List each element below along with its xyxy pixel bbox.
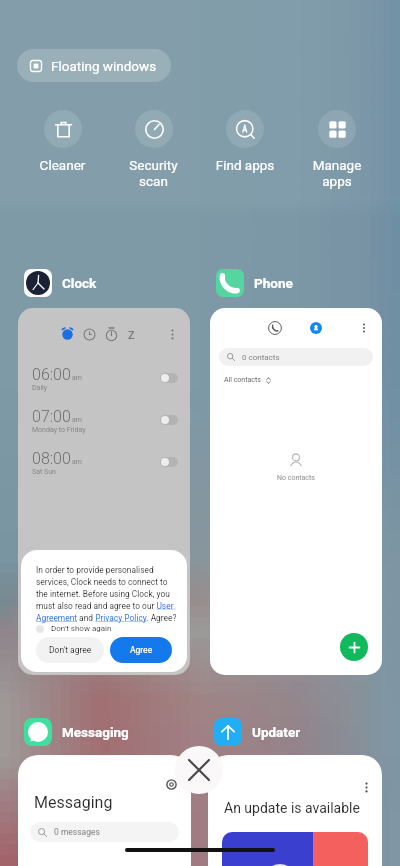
- button[interactable]: Floating windows: [17, 49, 171, 82]
- staticText: Don't agree: [49, 645, 92, 655]
- staticText: Agree: [130, 645, 153, 655]
- staticText: Messaging: [34, 793, 113, 812]
- button[interactable]: Z: [18, 308, 190, 675]
- button[interactable]: 08:00: [32, 441, 178, 483]
- staticText: am: [72, 374, 82, 382]
- staticText: am: [72, 458, 82, 466]
- staticText: Updater: [252, 724, 301, 740]
- button[interactable]: Add contact: [340, 633, 368, 661]
- staticText: No contacts: [277, 474, 315, 482]
- staticText: Daily: [32, 384, 48, 392]
- button[interactable]: 0 contacts: [210, 308, 382, 675]
- button[interactable]: 0 contacts: [219, 348, 373, 366]
- button[interactable]: An update is available: [208, 755, 382, 866]
- staticText: Sat Sun: [32, 468, 56, 476]
- button[interactable]: 06:00: [32, 357, 178, 399]
- button[interactable]: Close all: [175, 746, 223, 794]
- staticText: An update is available: [224, 800, 360, 816]
- staticText: Messaging: [62, 724, 129, 740]
- staticText: Monday to Friday: [32, 426, 86, 434]
- staticText: 0 messages: [54, 827, 100, 837]
- staticText: Don't show again: [51, 624, 112, 633]
- button[interactable]: Don't show again: [36, 624, 112, 633]
- button[interactable]: Manage apps: [291, 110, 383, 190]
- staticText: Z: [128, 329, 135, 342]
- button[interactable]: Messaging: [18, 755, 191, 866]
- staticText: Manage apps: [291, 157, 383, 190]
- staticText: am: [72, 416, 82, 424]
- button[interactable]: 0 messages: [30, 822, 179, 842]
- button[interactable]: Don't agree: [36, 637, 104, 663]
- button[interactable]: Cleaner: [17, 110, 108, 173]
- staticText: Floating windows: [51, 58, 157, 74]
- staticText: Clock: [62, 275, 97, 291]
- button[interactable]: Clock: [18, 269, 97, 297]
- staticText: 0 contacts: [242, 353, 280, 362]
- button[interactable]: Messaging: [18, 718, 129, 746]
- staticText: Security scan: [108, 157, 199, 190]
- button[interactable]: 07:00: [32, 399, 178, 441]
- staticText: 07:00: [32, 407, 71, 426]
- button[interactable]: Phone: [210, 269, 293, 297]
- staticText: All contacts: [224, 376, 261, 384]
- button[interactable]: Security scan: [108, 110, 199, 190]
- staticText: Cleaner: [17, 157, 108, 173]
- button[interactable]: Updater: [208, 718, 301, 746]
- staticText: Phone: [254, 275, 293, 291]
- button[interactable]: All contacts: [224, 376, 272, 384]
- button[interactable]: Find apps: [199, 110, 291, 173]
- staticText: In order to provide personalised service…: [36, 565, 177, 623]
- staticText: 08:00: [32, 449, 71, 468]
- button[interactable]: Agree: [110, 637, 172, 663]
- staticText: 06:00: [32, 365, 71, 384]
- staticText: Find apps: [199, 157, 291, 173]
